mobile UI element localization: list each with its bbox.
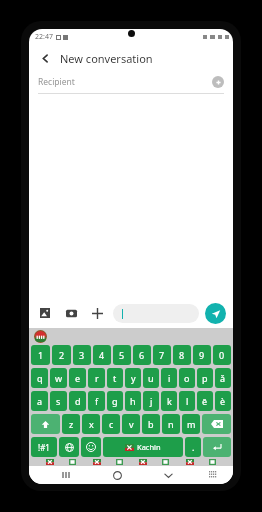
button[interactable]: t xyxy=(107,368,123,388)
staticText: 2 xyxy=(59,349,65,361)
staticText: r xyxy=(95,372,99,384)
button[interactable]: More options xyxy=(88,304,106,322)
button[interactable]: Emoji 1 xyxy=(68,459,77,466)
button[interactable]: z xyxy=(62,414,80,434)
staticText: l xyxy=(186,395,189,407)
button[interactable]: s xyxy=(50,391,67,411)
button[interactable]: d xyxy=(69,391,86,411)
button[interactable]: Gallery xyxy=(36,304,54,322)
button[interactable]: Space xyxy=(103,437,183,457)
button[interactable]: 3 xyxy=(73,345,91,365)
staticText: d xyxy=(75,395,81,407)
staticText: j xyxy=(150,395,153,407)
button[interactable]: Back xyxy=(37,50,53,66)
staticText: z xyxy=(69,418,74,430)
button[interactable]: e xyxy=(69,368,86,388)
button[interactable] xyxy=(113,304,199,323)
staticText: 0 xyxy=(219,349,225,361)
button[interactable]: Add recipient xyxy=(212,76,224,88)
button[interactable]: 0 xyxy=(213,345,231,365)
button[interactable]: Backspace xyxy=(202,414,231,434)
button[interactable]: 1 xyxy=(31,345,50,365)
staticText: Recipient xyxy=(38,76,75,88)
staticText: Kachin xyxy=(137,442,161,452)
staticText: New conversation xyxy=(60,51,153,66)
staticText: x xyxy=(89,418,94,430)
button[interactable]: !#1 xyxy=(31,437,57,457)
staticText: q xyxy=(37,372,43,384)
staticText: i xyxy=(168,372,171,384)
staticText: !#1 xyxy=(38,442,50,453)
staticText: 5 xyxy=(119,349,125,361)
button[interactable]: r xyxy=(88,368,105,388)
button[interactable]: . xyxy=(185,437,201,457)
staticText: 9 xyxy=(199,349,205,361)
button[interactable]: Emoji 5 xyxy=(161,459,170,466)
button[interactable]: 7 xyxy=(153,345,171,365)
button[interactable]: 6 xyxy=(133,345,151,365)
button[interactable]: 4 xyxy=(93,345,111,365)
button[interactable]: Emoji 6 xyxy=(185,459,194,466)
staticText: v xyxy=(129,418,134,430)
staticText: w xyxy=(55,372,63,384)
staticText: n xyxy=(168,418,174,430)
button[interactable]: a xyxy=(31,391,48,411)
button[interactable]: f xyxy=(88,391,105,411)
button[interactable]: u xyxy=(143,368,159,388)
staticText: ǎ xyxy=(220,372,226,384)
button[interactable]: Language xyxy=(59,437,79,457)
staticText: s xyxy=(56,395,61,407)
button[interactable]: j xyxy=(143,391,159,411)
staticText: 1 xyxy=(38,349,44,361)
staticText: 3 xyxy=(79,349,85,361)
button[interactable]: o xyxy=(179,368,195,388)
button[interactable]: b xyxy=(142,414,160,434)
button[interactable]: y xyxy=(125,368,141,388)
button[interactable]: Enter xyxy=(203,437,231,457)
button[interactable]: Emoji 0 xyxy=(45,459,54,466)
button[interactable]: l xyxy=(179,391,195,411)
staticText: . xyxy=(192,441,195,453)
button[interactable]: Emoji 2 xyxy=(92,459,101,466)
button[interactable]: g xyxy=(107,391,123,411)
button[interactable]: Camera xyxy=(62,304,80,322)
staticText: 6 xyxy=(139,349,145,361)
staticText: 22:47 xyxy=(35,32,53,42)
staticText: f xyxy=(95,395,99,407)
button[interactable]: 5 xyxy=(113,345,131,365)
button[interactable]: Send xyxy=(205,303,226,324)
button[interactable]: Recents xyxy=(58,467,74,483)
staticText: ē xyxy=(202,395,208,407)
staticText: t xyxy=(113,372,117,384)
button[interactable]: w xyxy=(50,368,67,388)
button[interactable]: Shift xyxy=(31,414,60,434)
button[interactable]: 9 xyxy=(193,345,211,365)
button[interactable]: ǎ xyxy=(215,368,231,388)
button[interactable]: Emoji 4 xyxy=(138,459,147,466)
button[interactable]: k xyxy=(161,391,177,411)
button[interactable]: Emoji xyxy=(81,437,101,457)
button[interactable]: v xyxy=(122,414,140,434)
staticText: k xyxy=(167,395,172,407)
staticText: y xyxy=(131,372,136,384)
button[interactable]: q xyxy=(31,368,48,388)
button[interactable]: Keyboard layout xyxy=(205,467,221,483)
staticText: e xyxy=(75,372,81,384)
button[interactable]: Hide keyboard xyxy=(160,467,176,483)
button[interactable]: ē xyxy=(197,391,213,411)
button[interactable]: n xyxy=(162,414,180,434)
button[interactable]: h xyxy=(125,391,141,411)
button[interactable]: Emoji 7 xyxy=(208,459,217,466)
staticText: o xyxy=(184,372,190,384)
button[interactable]: c xyxy=(102,414,120,434)
button[interactable]: x xyxy=(82,414,100,434)
button[interactable]: p xyxy=(197,368,213,388)
button[interactable]: m xyxy=(182,414,200,434)
button[interactable]: 8 xyxy=(173,345,191,365)
button[interactable]: 2 xyxy=(52,345,71,365)
button[interactable]: è xyxy=(215,391,231,411)
button[interactable]: Emoji suggestion xyxy=(34,330,47,343)
button[interactable]: i xyxy=(161,368,177,388)
button[interactable]: Home xyxy=(109,467,125,483)
button[interactable]: Emoji 3 xyxy=(115,459,124,466)
